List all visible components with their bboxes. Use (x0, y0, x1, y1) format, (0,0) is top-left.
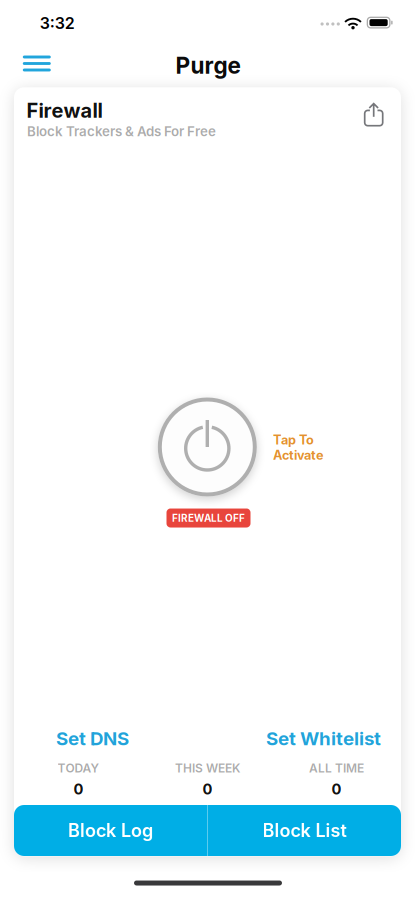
button[interactable]: Set DNS (14, 723, 171, 753)
button[interactable]: Menu (9, 45, 65, 82)
button[interactable]: Tap to activate firewall (152, 392, 262, 502)
staticText: FIREWALL OFF (172, 512, 245, 524)
staticText: Set Whitelist (266, 727, 381, 750)
staticText: 0 (73, 780, 83, 798)
staticText: Block Trackers & Ads For Free (27, 123, 216, 139)
staticText: TODAY (57, 761, 99, 775)
staticText: Purge (175, 52, 240, 79)
staticText: Tap To Activate (273, 432, 324, 463)
staticText: Set DNS (56, 727, 129, 750)
button[interactable]: Share (357, 96, 391, 134)
staticText: ALL TIME (309, 761, 364, 775)
staticText: Block Log (68, 820, 153, 841)
staticText: 0 (331, 780, 341, 798)
staticText: THIS WEEK (175, 761, 240, 775)
button[interactable]: Block List (208, 805, 401, 856)
staticText: Firewall (26, 98, 102, 123)
staticText: 3:32 (40, 13, 75, 33)
button[interactable]: Block Log (14, 805, 207, 856)
staticText: Block List (262, 820, 346, 841)
staticText: 0 (202, 780, 212, 798)
button[interactable]: Set Whitelist (243, 723, 403, 753)
